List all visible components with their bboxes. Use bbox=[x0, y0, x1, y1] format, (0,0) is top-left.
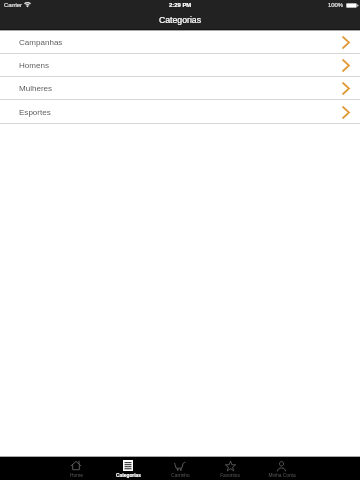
staticText: Carrier bbox=[4, 2, 22, 9]
button[interactable]: Categorias tab bbox=[103, 457, 153, 480]
button[interactable]: Esportes bbox=[0, 100, 360, 124]
staticText: Carrinho bbox=[171, 473, 190, 478]
staticText: Minha Conta bbox=[268, 473, 296, 478]
staticText: 2:29 PM bbox=[169, 2, 192, 9]
button[interactable]: Favoritos tab bbox=[205, 457, 255, 480]
staticText: Home bbox=[70, 473, 83, 478]
button[interactable]: Campanhas bbox=[0, 31, 360, 54]
button[interactable]: Minha Conta tab bbox=[257, 457, 307, 480]
button[interactable]: Carrinho tab bbox=[155, 457, 205, 480]
staticText: 100% bbox=[328, 2, 344, 9]
staticText: Homens bbox=[19, 61, 49, 70]
button[interactable]: Homens bbox=[0, 54, 360, 77]
staticText: Campanhas bbox=[19, 38, 63, 47]
staticText: Mulheres bbox=[19, 84, 53, 93]
staticText: Categorias bbox=[159, 15, 202, 25]
button[interactable]: Mulheres bbox=[0, 77, 360, 100]
staticText: Categorias bbox=[116, 473, 141, 478]
staticText: Favoritos bbox=[220, 473, 240, 478]
staticText: Esportes bbox=[19, 108, 51, 117]
button[interactable]: Home tab bbox=[51, 457, 101, 480]
